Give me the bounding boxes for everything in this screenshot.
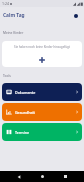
button[interactable]: Recent apps bbox=[60, 171, 71, 182]
staticText: Meine Kinder bbox=[3, 31, 24, 35]
button[interactable]: Sie haben noch keine Kinder hinzugefügt bbox=[2, 41, 82, 67]
button[interactable]: Dokumente bbox=[2, 83, 82, 101]
staticText: 1:24 bbox=[2, 1, 9, 6]
button[interactable]: Back bbox=[13, 171, 24, 182]
staticText: Calm Tag bbox=[3, 12, 25, 19]
staticText: Gesundheit bbox=[15, 110, 35, 115]
staticText: Dokumente bbox=[15, 90, 36, 95]
button[interactable]: Home bbox=[37, 171, 48, 182]
staticText: Termine bbox=[15, 130, 30, 135]
button[interactable]: Gesundheit bbox=[2, 103, 82, 121]
staticText: Tools bbox=[3, 74, 11, 78]
staticText: Sie haben noch keine Kinder hinzugefügt bbox=[14, 45, 70, 49]
button[interactable]: Account bbox=[71, 11, 80, 20]
button[interactable]: Termine bbox=[2, 123, 82, 141]
